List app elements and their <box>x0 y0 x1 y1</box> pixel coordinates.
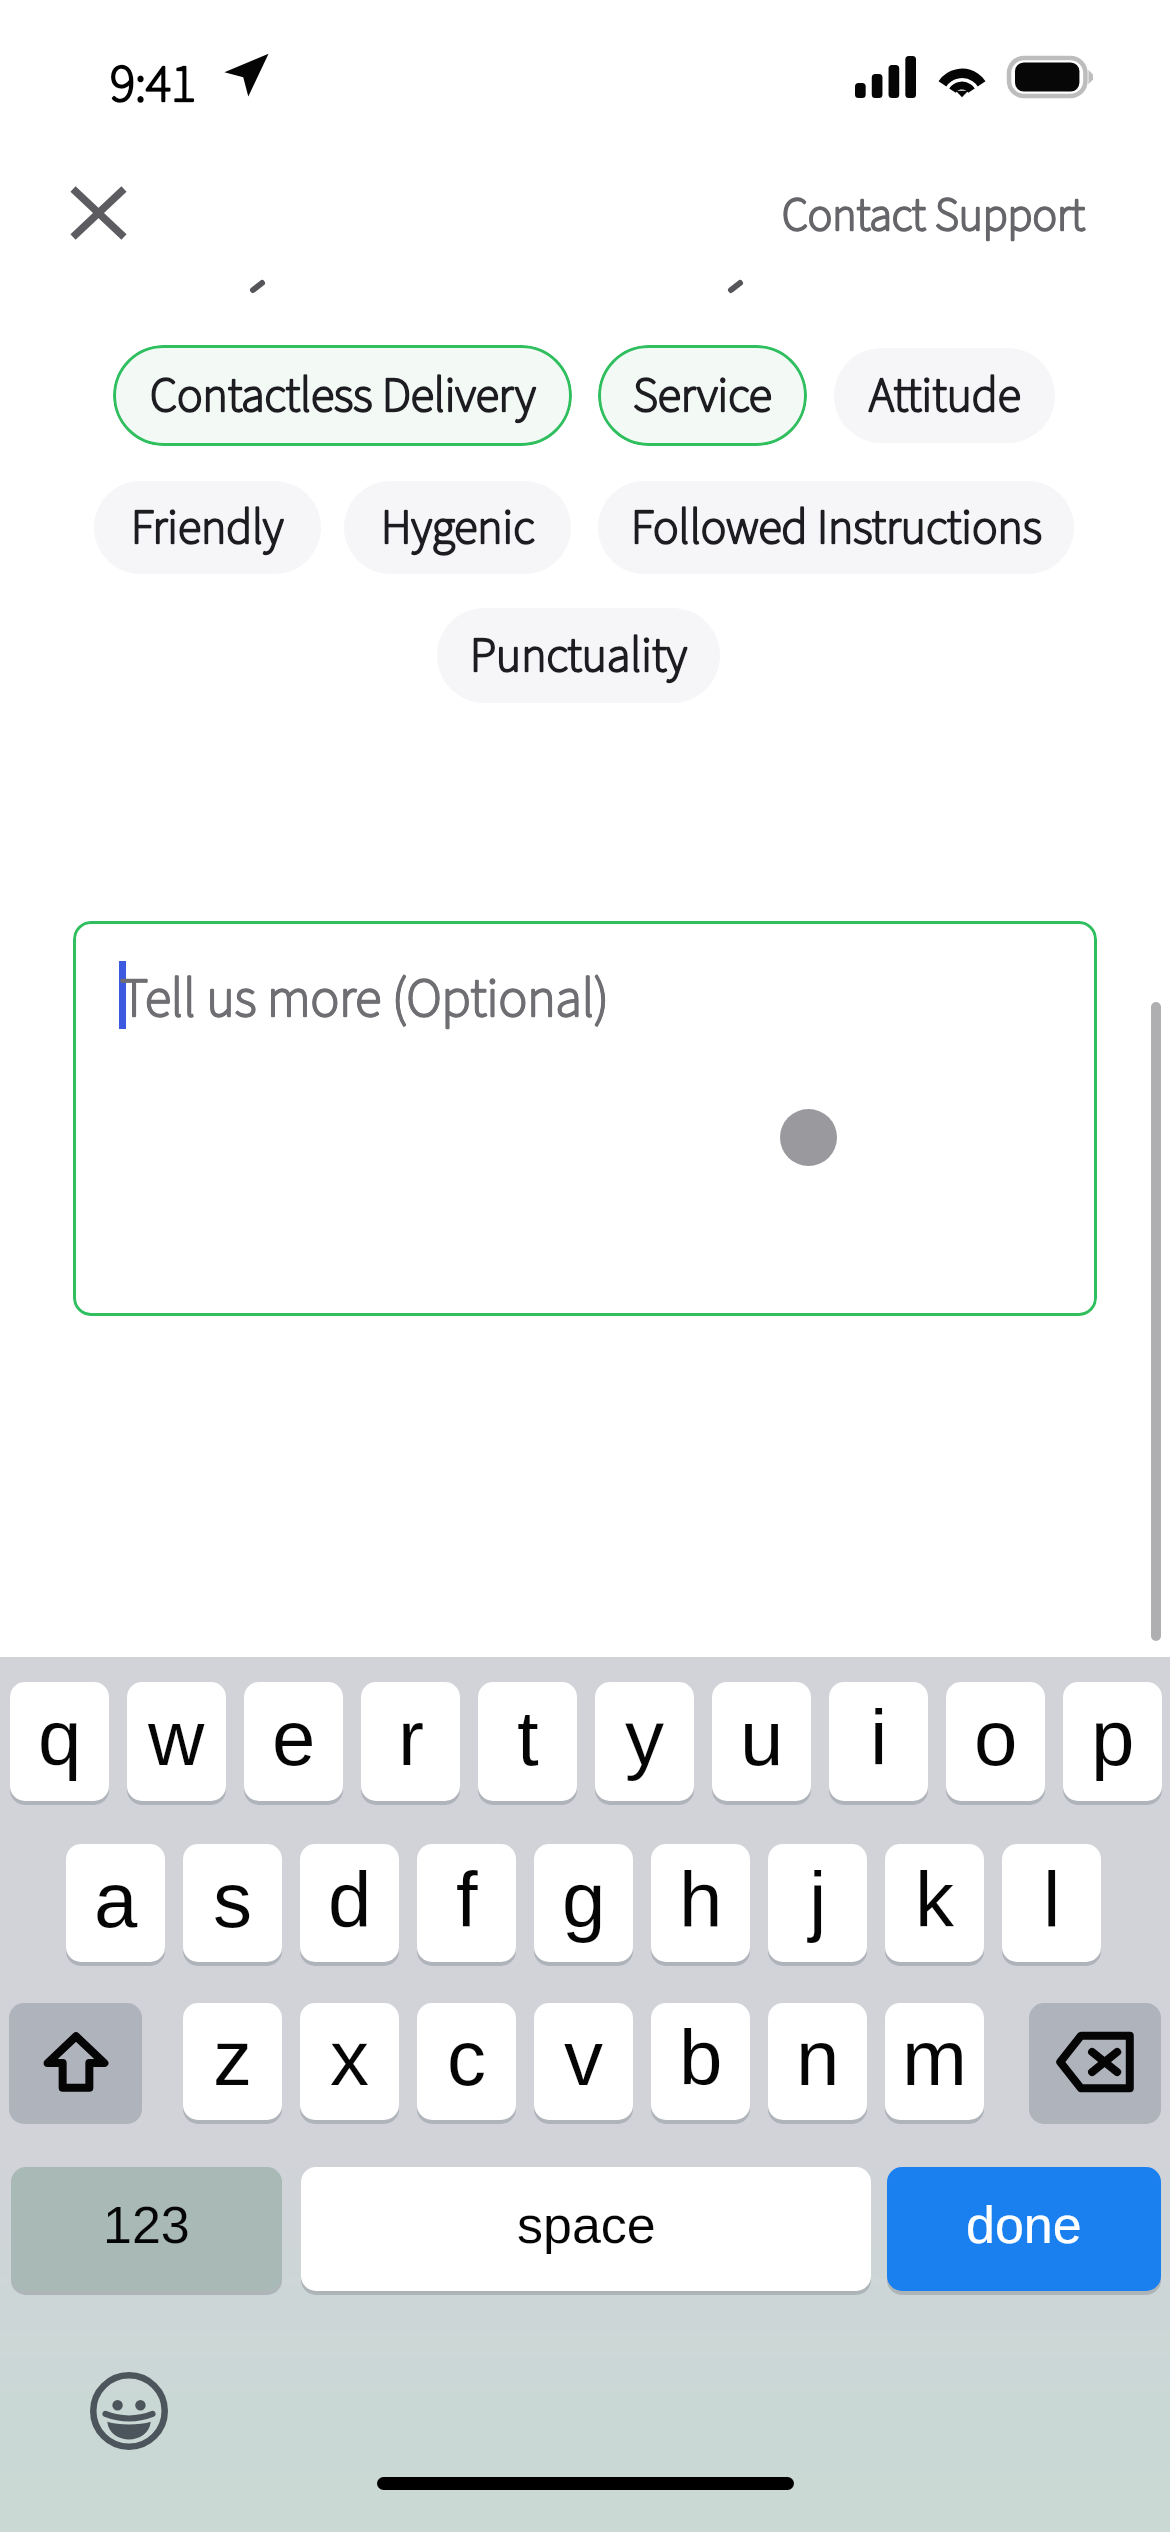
button[interactable]: Delete <box>1029 2003 1161 2120</box>
button[interactable]: c <box>417 2003 516 2120</box>
staticText: Followed Instructions <box>631 494 1042 562</box>
button[interactable]: Hygenic <box>344 481 571 574</box>
staticText: m <box>902 2014 967 2101</box>
staticText: w <box>148 1694 205 1781</box>
staticText: z <box>213 2014 252 2101</box>
button[interactable]: q <box>10 1682 109 1801</box>
button[interactable]: Emoji <box>88 2370 170 2452</box>
staticText: Hygenic <box>381 494 535 562</box>
staticText: y <box>625 1694 664 1781</box>
staticText: b <box>679 2014 723 2101</box>
staticText: l <box>1043 1856 1061 1943</box>
button[interactable]: Service <box>598 345 807 446</box>
staticText: v <box>564 2014 603 2101</box>
button[interactable]: s <box>183 1844 282 1962</box>
button[interactable]: o <box>946 1682 1045 1801</box>
staticText: Friendly <box>131 494 284 562</box>
staticText: a <box>94 1856 138 1943</box>
staticText: Contact Support <box>782 183 1085 249</box>
button[interactable]: n <box>768 2003 867 2120</box>
staticText: Contact Support <box>782 183 1085 249</box>
staticText: e <box>272 1694 316 1781</box>
staticText: Friendly <box>131 494 284 562</box>
button[interactable]: d <box>300 1844 399 1962</box>
button[interactable]: e <box>244 1682 343 1801</box>
button[interactable]: k <box>885 1844 984 1962</box>
staticText: Service <box>633 362 772 430</box>
button[interactable]: m <box>885 2003 984 2120</box>
button[interactable]: a <box>66 1844 165 1962</box>
staticText: done <box>966 2196 1082 2254</box>
staticText: c <box>447 2014 486 2101</box>
button[interactable]: Close <box>53 168 143 258</box>
staticText: x <box>330 2014 369 2101</box>
button[interactable]: z <box>183 2003 282 2120</box>
button[interactable]: Tell us more (Optional) <box>73 921 1097 1316</box>
staticText: f <box>456 1856 478 1943</box>
staticText: r <box>398 1694 424 1781</box>
staticText: j <box>809 1856 827 1943</box>
staticText: t <box>517 1694 539 1781</box>
staticText: g <box>562 1856 606 1943</box>
staticText: Tell us more (Optional) <box>120 961 609 1038</box>
staticText: Followed Instructions <box>631 494 1042 562</box>
staticText: d <box>328 1856 372 1943</box>
staticText: 9:41 <box>110 47 197 122</box>
button[interactable]: j <box>768 1844 867 1962</box>
staticText: Contactless Delivery <box>150 362 536 430</box>
staticText: Contactless Delivery <box>150 362 536 430</box>
staticText: Hygenic <box>381 494 535 562</box>
button[interactable]: r <box>361 1682 460 1801</box>
staticText: k <box>915 1856 954 1943</box>
staticText: o <box>974 1694 1018 1781</box>
button[interactable]: p <box>1063 1682 1162 1801</box>
staticText: Attitude <box>869 362 1021 430</box>
button[interactable]: g <box>534 1844 633 1962</box>
button[interactable]: b <box>651 2003 750 2120</box>
button[interactable]: f <box>417 1844 516 1962</box>
staticText: space <box>517 2196 656 2254</box>
staticText: n <box>796 2014 840 2101</box>
button[interactable]: space <box>301 2167 871 2291</box>
button[interactable]: Attitude <box>834 348 1055 443</box>
button[interactable]: h <box>651 1844 750 1962</box>
button[interactable]: t <box>478 1682 577 1801</box>
button[interactable]: Contact Support <box>758 171 1109 261</box>
button[interactable]: y <box>595 1682 694 1801</box>
staticText: Attitude <box>869 362 1021 430</box>
button[interactable]: v <box>534 2003 633 2120</box>
button[interactable]: Contactless Delivery <box>113 345 572 446</box>
button[interactable]: 123 <box>11 2167 282 2291</box>
button[interactable]: u <box>712 1682 811 1801</box>
staticText: q <box>38 1694 82 1781</box>
button[interactable]: w <box>127 1682 226 1801</box>
staticText: Service <box>633 362 772 430</box>
button[interactable]: x <box>300 2003 399 2120</box>
button[interactable]: Punctuality <box>437 608 720 703</box>
staticText: u <box>740 1694 784 1781</box>
button[interactable]: Shift <box>9 2003 142 2120</box>
button[interactable]: Followed Instructions <box>598 481 1074 574</box>
staticText: i <box>870 1694 888 1781</box>
button[interactable]: done <box>887 2167 1161 2291</box>
button[interactable]: l <box>1002 1844 1101 1962</box>
staticText: s <box>213 1856 252 1943</box>
staticText: Punctuality <box>470 622 687 690</box>
staticText: h <box>679 1856 723 1943</box>
button[interactable]: i <box>829 1682 928 1801</box>
staticText: p <box>1091 1694 1135 1781</box>
staticText: Tell us more (Optional) <box>120 961 609 1038</box>
staticText: 9:41 <box>110 47 197 122</box>
staticText: 123 <box>103 2196 190 2254</box>
staticText: Punctuality <box>470 622 687 690</box>
button[interactable]: Friendly <box>94 481 321 574</box>
